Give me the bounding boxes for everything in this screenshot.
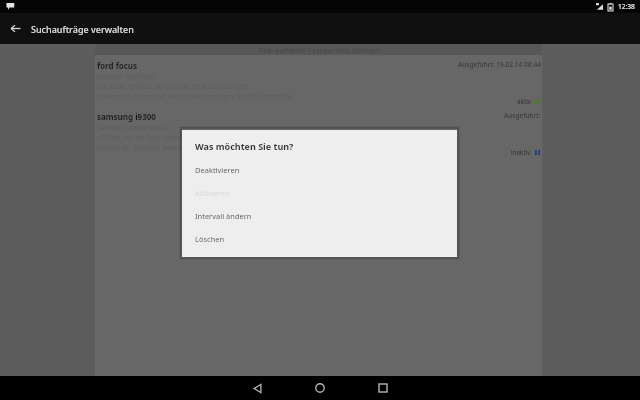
staticText: +500km, nur als Foto, Global, 50 Artikel… [97,133,241,142]
staticText: Intervall ändern [195,211,252,221]
button[interactable]: Back [0,13,31,44]
button[interactable]: samsung i9300 [95,106,542,157]
button[interactable]: Deaktivieren [182,158,457,181]
button[interactable]: ford focus [95,55,542,106]
button[interactable]: Intervall ändern [182,204,457,227]
staticText: Löschen [195,234,225,244]
button[interactable]: Back [235,376,279,400]
staticText: ford focus [97,60,138,71]
button[interactable]: Recent apps [361,376,405,400]
staticText: anzeige.de, Quickauf, www.ebay.de, inklu… [97,143,270,152]
staticText: Klick: Ausführen | Langer Klick: Optione… [258,46,380,55]
staticText: Ausgeführt: 19.02.14 08:44 [458,60,541,69]
staticText: Deaktivieren [195,165,240,175]
staticText: aktiv [517,97,531,106]
staticText: Ausgeführt: [504,111,541,120]
button[interactable]: Löschen [182,227,457,250]
staticText: 12:38 [618,2,635,11]
staticText: Was möchten Sie tun? [195,140,294,152]
staticText: samsung i9300 [97,111,156,122]
button[interactable]: Home [298,376,342,400]
staticText: Aktivieren [195,188,231,198]
staticText: Suchaufträge verwalten [31,23,134,35]
staticText: inaktiv [511,148,531,157]
